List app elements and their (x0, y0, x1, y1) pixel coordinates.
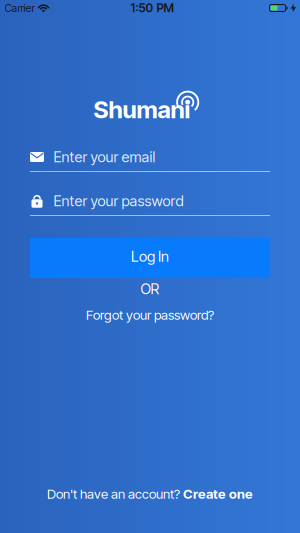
staticText: Enter your email (53, 148, 155, 166)
staticText: Forgot your password? (86, 307, 214, 323)
staticText: Log In (131, 248, 169, 265)
button[interactable]: Enter your password (30, 191, 270, 216)
staticText: Shumani (93, 95, 190, 124)
button[interactable]: Enter your email (30, 147, 270, 172)
staticText: 1:50 PM (130, 1, 173, 15)
button[interactable]: Don't have an account? Create one (47, 486, 253, 502)
button[interactable]: Log In (30, 238, 270, 278)
staticText: Carrier (4, 2, 34, 14)
button[interactable]: Forgot your password? (86, 307, 214, 323)
staticText: Enter your password (53, 192, 183, 210)
staticText: Don't have an account? Create one (47, 486, 253, 502)
staticText: OR (140, 280, 159, 298)
